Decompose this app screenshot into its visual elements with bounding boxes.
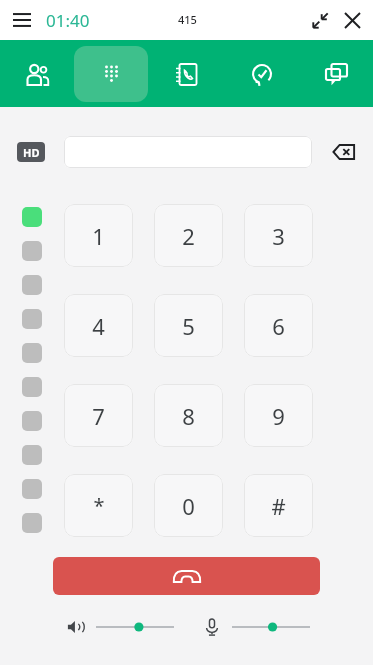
button[interactable]: Menu <box>8 6 36 34</box>
staticText: 9 <box>272 401 285 431</box>
staticText: 0 <box>182 491 195 521</box>
button[interactable]: * <box>64 474 133 537</box>
button[interactable]: 6 <box>244 294 313 357</box>
button[interactable]: 4 <box>64 294 133 357</box>
button[interactable]: Number input <box>64 136 312 168</box>
button[interactable]: HD <box>17 142 45 162</box>
button[interactable] <box>232 617 310 637</box>
button[interactable]: Messages <box>298 40 373 107</box>
staticText: 3 <box>272 221 285 251</box>
button[interactable]: 2 <box>154 204 223 267</box>
button[interactable]: Close <box>339 7 365 33</box>
button[interactable]: Phonebook <box>148 40 223 107</box>
button[interactable]: # <box>244 474 313 537</box>
staticText: # <box>271 491 286 521</box>
staticText: HD <box>23 145 40 160</box>
staticText: 7 <box>92 401 105 431</box>
button[interactable]: Microphone volume <box>200 615 224 639</box>
button[interactable]: Dialpad <box>74 40 148 107</box>
button[interactable]: 9 <box>244 384 313 447</box>
staticText: 4 <box>92 311 105 341</box>
button[interactable]: 8 <box>154 384 223 447</box>
button[interactable]: 3 <box>244 204 313 267</box>
button[interactable]: 1 <box>64 204 133 267</box>
button[interactable]: End call <box>53 557 320 595</box>
button[interactable]: 5 <box>154 294 223 357</box>
staticText: 1 <box>92 221 105 251</box>
button[interactable] <box>96 617 174 637</box>
staticText: * <box>93 492 105 519</box>
button[interactable]: Recents <box>223 40 298 107</box>
button[interactable]: Speaker volume <box>64 615 88 639</box>
button[interactable]: Contacts <box>0 40 74 107</box>
button[interactable]: 7 <box>64 384 133 447</box>
staticText: 2 <box>182 221 195 251</box>
staticText: 01:40 <box>46 9 90 32</box>
button[interactable]: 0 <box>154 474 223 537</box>
staticText: 415 <box>178 12 197 27</box>
staticText: 8 <box>182 401 195 431</box>
button[interactable]: Backspace <box>327 135 361 169</box>
staticText: 5 <box>182 311 195 341</box>
button[interactable]: Minimize <box>307 7 333 33</box>
staticText: 6 <box>272 311 285 341</box>
